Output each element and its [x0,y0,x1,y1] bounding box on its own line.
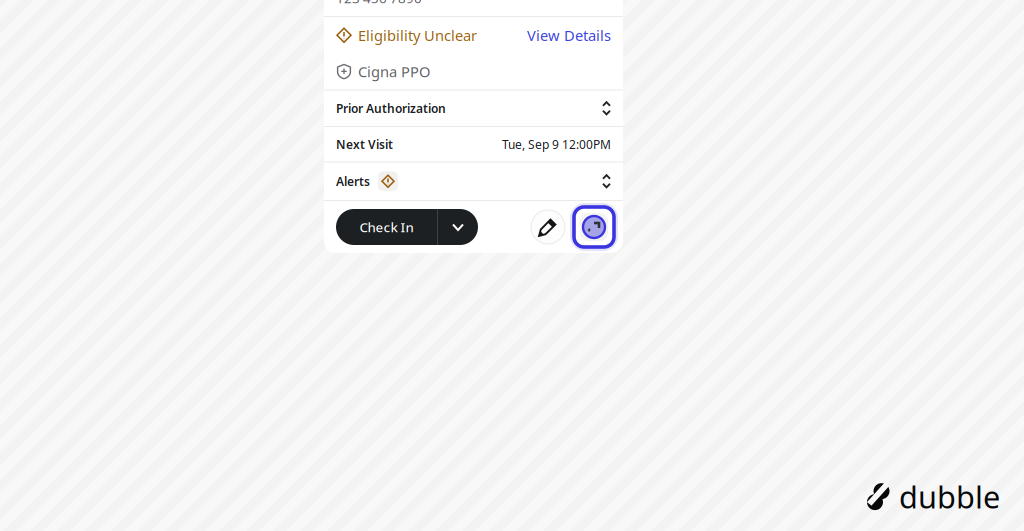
button[interactable]: Eligibility Unclear [336,25,477,45]
button[interactable]: Check In [336,209,437,245]
button[interactable]: Prior Authorization [324,90,623,126]
staticText: Check In [359,218,413,236]
staticText: Alerts [336,173,370,189]
staticText: Next Visit [336,136,393,152]
button[interactable]: View Details [527,25,611,45]
staticText: Cigna PPO [358,62,430,81]
staticText: 123 456 7890 [336,0,422,7]
staticText: Eligibility Unclear [358,25,477,45]
button[interactable]: Alerts [324,162,623,200]
button[interactable]: More check-in options [438,209,478,245]
button[interactable]: Capture [574,207,614,247]
staticText: Prior Authorization [336,100,446,116]
staticText: View Details [527,25,611,45]
staticText: Tue, Sep 9 12:00PM [502,136,611,152]
staticText: dubble [899,476,1000,517]
button[interactable]: Edit [531,210,565,244]
